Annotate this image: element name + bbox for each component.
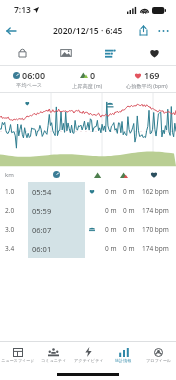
staticText: 174 bpm bbox=[142, 244, 169, 253]
staticText: 平均ペース bbox=[16, 82, 43, 89]
staticText: 2.0 bbox=[5, 206, 28, 215]
staticText: km bbox=[5, 171, 28, 179]
staticText: 0 m bbox=[105, 225, 117, 234]
staticText: 05:59 bbox=[32, 206, 52, 216]
staticText: 169 bbox=[144, 69, 160, 81]
button[interactable]: Back bbox=[0, 20, 22, 41]
button[interactable]: プロフィール bbox=[141, 342, 176, 368]
button[interactable]: Stats bbox=[88, 41, 132, 65]
staticText: 0 m bbox=[123, 244, 135, 253]
staticText: 3.4 bbox=[5, 244, 28, 253]
button[interactable]: Share bbox=[132, 20, 154, 41]
staticText: 162 bpm bbox=[142, 187, 169, 196]
staticText: 05:54 bbox=[32, 187, 52, 197]
staticText: 0 m bbox=[105, 206, 117, 215]
button[interactable]: 0 bbox=[58, 66, 117, 92]
button[interactable]: 統計情報 bbox=[106, 342, 141, 368]
staticText: プロフィール bbox=[146, 358, 172, 363]
staticText: 0 bbox=[90, 69, 96, 81]
staticText: 7:13 bbox=[14, 4, 31, 16]
staticText: 心拍数平均 (bpm) bbox=[126, 82, 168, 89]
button[interactable]: 169 bbox=[117, 66, 176, 92]
staticText: 統計情報 bbox=[115, 358, 132, 363]
button[interactable]: Like bbox=[132, 41, 176, 65]
button[interactable]: コミュニティ bbox=[36, 342, 71, 368]
button[interactable]: 3.0 bbox=[5, 220, 171, 239]
staticText: 2020/12/15 · 6:45 bbox=[53, 25, 123, 37]
staticText: 1.0 bbox=[5, 187, 28, 196]
button[interactable]: ニュースフィード bbox=[0, 342, 36, 368]
staticText: 0 m bbox=[105, 187, 117, 196]
staticText: 174 bpm bbox=[142, 206, 169, 215]
staticText: 06:01 bbox=[32, 244, 52, 254]
button[interactable]: Photo bbox=[44, 41, 88, 65]
staticText: 上昇高度 (m) bbox=[72, 82, 103, 89]
staticText: アクティビティ bbox=[74, 358, 104, 363]
button[interactable]: 3.4 bbox=[5, 239, 171, 258]
staticText: コミュニティ bbox=[41, 358, 67, 363]
button[interactable]: 06:00 bbox=[0, 66, 58, 92]
staticText: 0 m bbox=[123, 225, 135, 234]
staticText: 0 m bbox=[123, 206, 135, 215]
staticText: 06:07 bbox=[32, 225, 52, 235]
staticText: 06:00 bbox=[22, 69, 46, 81]
staticText: 3.0 bbox=[5, 225, 28, 234]
staticText: 0 m bbox=[123, 187, 135, 196]
staticText: ニュースフィード bbox=[1, 358, 35, 363]
button[interactable]: Shoe bbox=[0, 41, 44, 65]
button[interactable]: 1.0 bbox=[5, 182, 171, 201]
staticText: 0 m bbox=[105, 244, 117, 253]
button[interactable]: アクティビティ bbox=[71, 342, 106, 368]
button[interactable]: 2.0 bbox=[5, 201, 171, 220]
staticText: 170 bpm bbox=[142, 225, 169, 234]
button[interactable]: More options bbox=[154, 20, 172, 41]
